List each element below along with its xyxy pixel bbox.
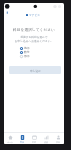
staticText: ホーム (7, 141, 14, 144)
staticText: 申し込む (30, 69, 41, 72)
button[interactable]: 申し込む (9, 66, 61, 74)
staticText: 科目を選択してください (4, 27, 64, 32)
button[interactable]: 英語 (4, 46, 64, 50)
staticText: 英語 (24, 46, 30, 50)
button[interactable]: 数学 (4, 50, 64, 54)
button[interactable]: 国語 (4, 54, 64, 58)
button[interactable]: マナビス (26, 13, 41, 16)
button[interactable]: 受講 (16, 133, 28, 144)
button[interactable]: 設定 (52, 133, 64, 144)
button[interactable]: ホーム (4, 133, 16, 144)
staticText: マナビス (29, 13, 41, 16)
staticText: 数学 (24, 50, 30, 54)
button[interactable]: 成績 (40, 133, 52, 144)
staticText: 成績 (44, 141, 48, 144)
staticText: 設定 (56, 141, 60, 144)
staticText: 受講する科目を選んで お申し込みへお進みください。 (4, 35, 64, 42)
staticText: 国語 (24, 54, 30, 58)
staticText: 受講 (20, 141, 24, 144)
button[interactable]: 予約 (28, 133, 40, 144)
staticText: 予約 (32, 141, 36, 144)
